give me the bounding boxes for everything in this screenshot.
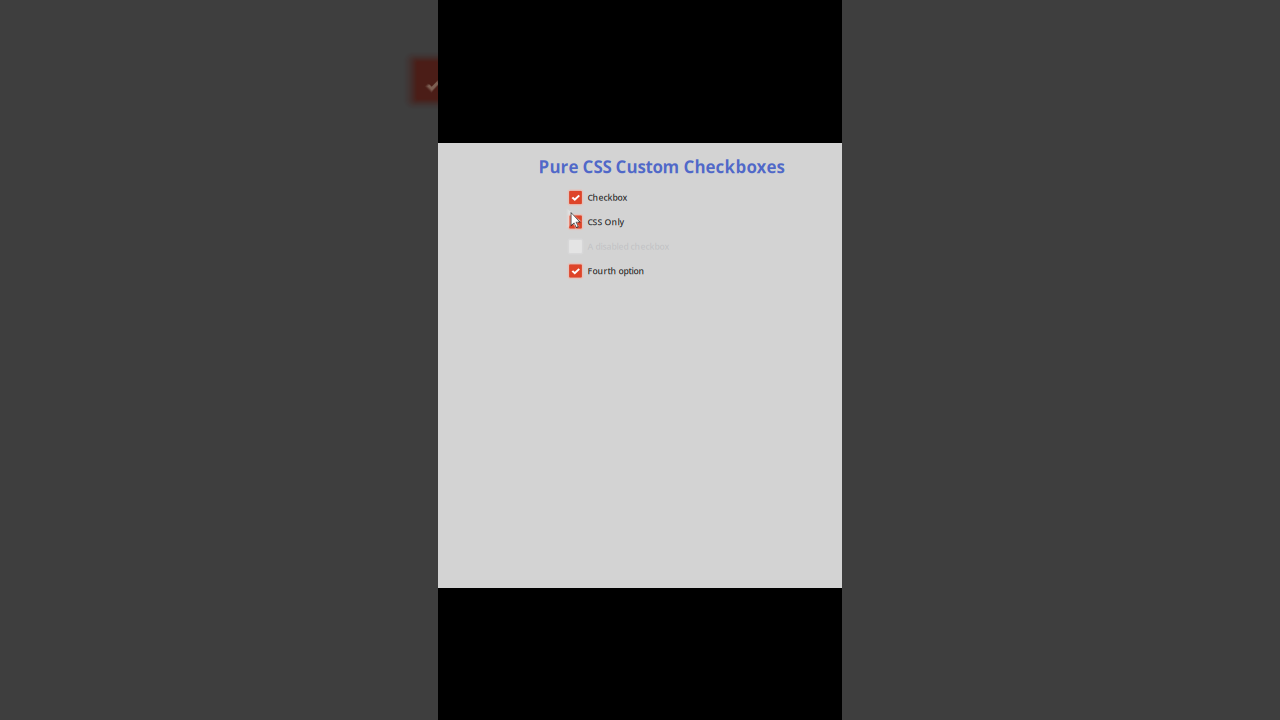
staticText: Checkbox <box>588 192 628 203</box>
staticText: A disabled checkbox <box>588 241 670 252</box>
staticText: CSS Only <box>588 216 625 228</box>
staticText: Fourth option <box>588 265 645 277</box>
staticText: Pure CSS Custom Checkboxes <box>538 155 784 178</box>
